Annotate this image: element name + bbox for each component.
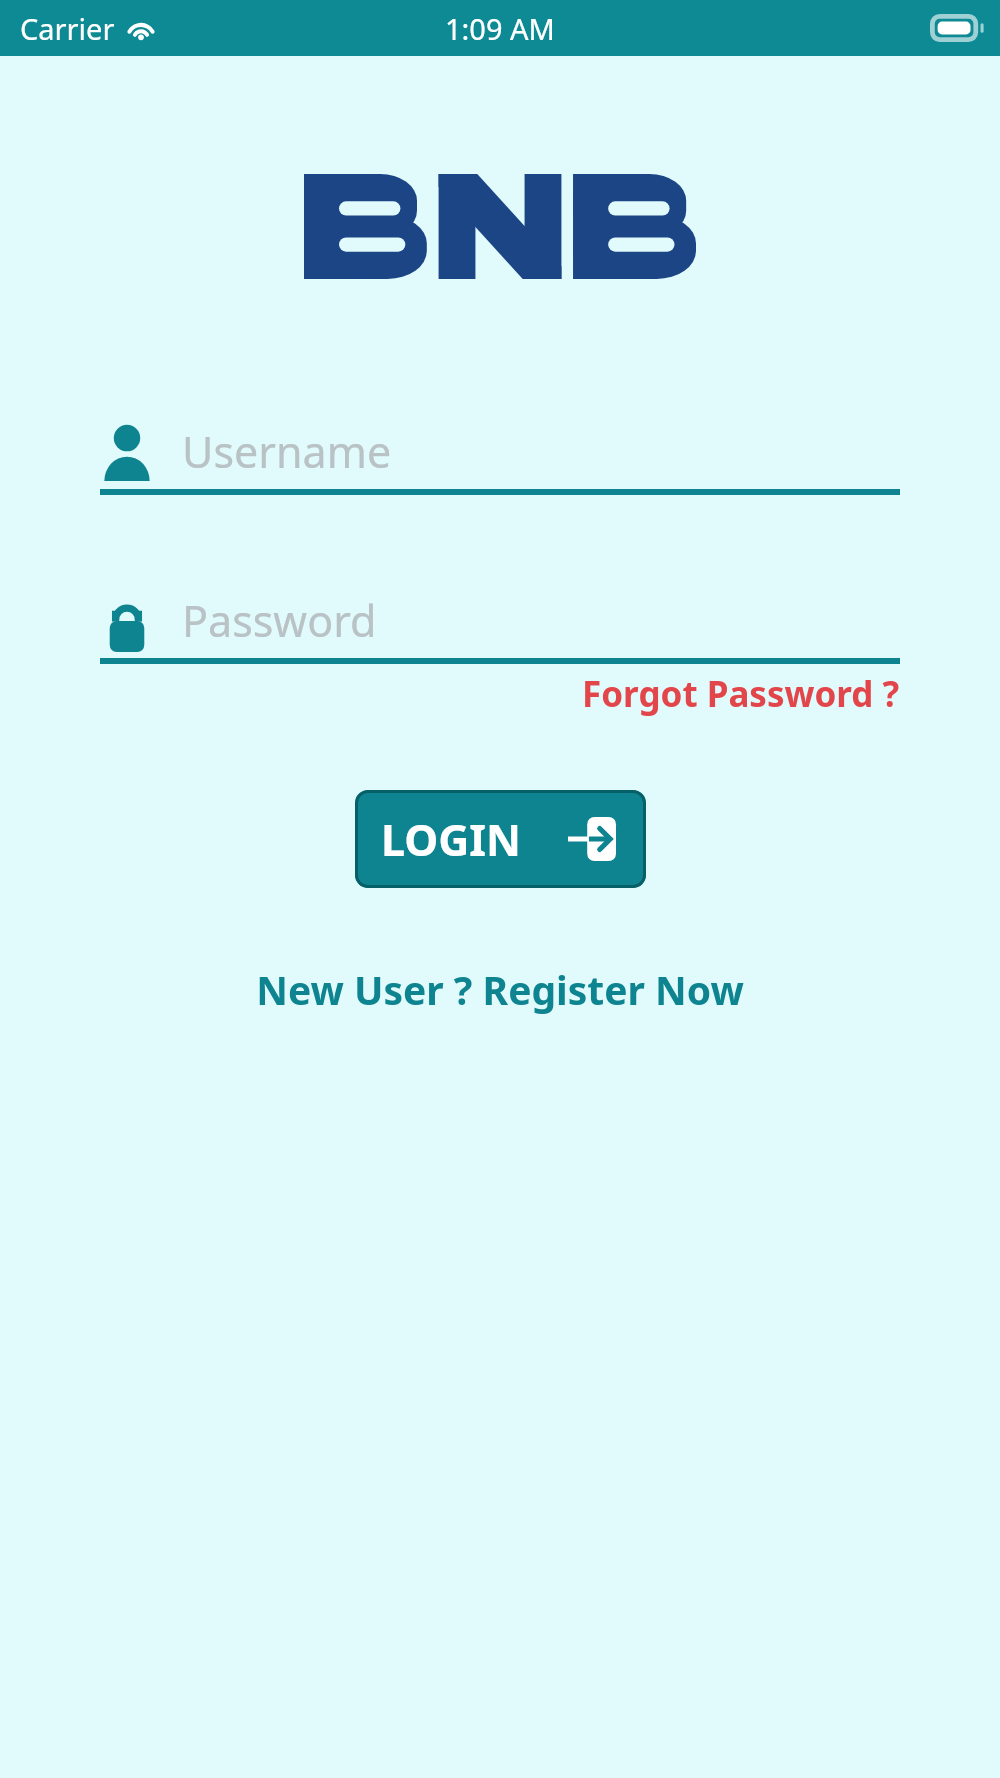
staticText: New User ? Register Now — [256, 963, 744, 1016]
button[interactable]: LOGIN — [355, 790, 646, 888]
button[interactable]: Password — [100, 583, 900, 658]
staticText: Password — [182, 591, 377, 650]
other: Wi-Fi signal — [125, 16, 157, 42]
staticText: Forgot Password ? — [582, 670, 900, 718]
other: BNB logo — [304, 174, 696, 279]
staticText: LOGIN — [381, 810, 522, 869]
button[interactable]: New User ? Register Now — [244, 955, 756, 1024]
staticText: Username — [182, 422, 392, 481]
button[interactable]: Forgot Password ? — [582, 664, 900, 718]
staticText: 1:09 AM — [445, 9, 555, 48]
button[interactable]: Username — [100, 414, 900, 489]
other: Battery full — [930, 14, 986, 42]
staticText: Carrier — [20, 9, 115, 48]
